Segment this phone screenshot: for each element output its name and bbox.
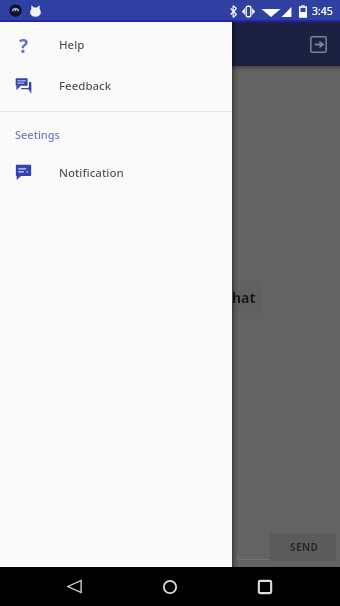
staticText: Notification <box>59 165 124 181</box>
button[interactable]: SEND <box>270 533 336 561</box>
staticText: Seetings <box>15 127 60 142</box>
button[interactable]: Feedback <box>0 67 232 105</box>
staticText: SEND <box>290 540 319 554</box>
button[interactable]: Notification <box>0 156 232 189</box>
staticText: Feedback <box>59 78 112 94</box>
button[interactable]: Home <box>148 567 192 606</box>
staticText: ? <box>19 33 29 55</box>
button[interactable]: Back <box>52 567 96 606</box>
button[interactable]: Logout <box>301 27 335 61</box>
staticText: Help <box>59 37 85 53</box>
button[interactable]: Recent apps <box>243 567 287 606</box>
button[interactable]: ? <box>0 22 232 67</box>
staticText: hat <box>232 288 256 307</box>
staticText: 3:45 <box>312 4 333 18</box>
